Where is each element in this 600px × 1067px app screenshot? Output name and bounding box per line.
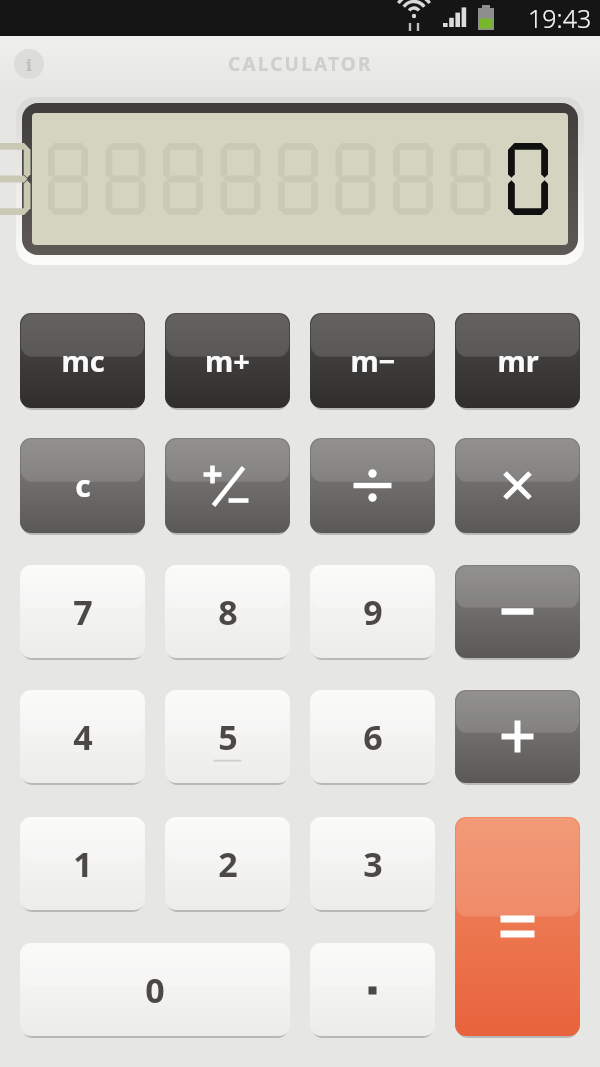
staticText: m+ xyxy=(205,341,250,380)
staticText: 3 xyxy=(363,841,383,887)
button[interactable]: Divide xyxy=(310,438,435,533)
button[interactable]: mr xyxy=(455,313,580,408)
staticText: 0 xyxy=(145,967,165,1013)
staticText: 7 xyxy=(73,589,93,635)
staticText: 9 xyxy=(363,589,383,635)
staticText: m− xyxy=(350,341,396,380)
button[interactable]: mc xyxy=(20,313,145,408)
button[interactable]: Multiply xyxy=(455,438,580,533)
staticText: 8 xyxy=(218,589,238,635)
button[interactable]: 3 xyxy=(310,817,435,910)
button[interactable]: Plus xyxy=(455,690,580,783)
button[interactable]: c xyxy=(20,438,145,533)
button[interactable]: 6 xyxy=(310,690,435,783)
staticText: mc xyxy=(61,341,105,380)
staticText: 6 xyxy=(363,714,383,760)
button[interactable]: Minus xyxy=(455,565,580,658)
staticText: 2 xyxy=(218,841,238,887)
staticText: 5 xyxy=(218,714,238,760)
button[interactable]: 1 xyxy=(20,817,145,910)
staticText: 1 xyxy=(73,841,93,887)
button[interactable]: Plus minus sign toggle xyxy=(165,438,290,533)
staticText: CALCULATOR xyxy=(228,51,373,77)
button[interactable]: 8 xyxy=(165,565,290,658)
button[interactable]: m+ xyxy=(165,313,290,408)
staticText: mr xyxy=(497,341,539,380)
button[interactable]: 5 xyxy=(165,690,290,783)
button[interactable]: Decimal point xyxy=(310,943,435,1036)
button[interactable]: Info xyxy=(14,49,44,79)
button[interactable]: 7 xyxy=(20,565,145,658)
button[interactable]: 4 xyxy=(20,690,145,783)
staticText: 4 xyxy=(73,714,93,760)
staticText: i xyxy=(26,53,32,76)
staticText: 19:43 xyxy=(528,1,592,35)
button[interactable]: m− xyxy=(310,313,435,408)
button[interactable]: 0 xyxy=(20,943,290,1036)
button[interactable]: Equals xyxy=(455,817,580,1036)
button[interactable]: 2 xyxy=(165,817,290,910)
staticText: c xyxy=(75,465,91,506)
button[interactable]: 9 xyxy=(310,565,435,658)
